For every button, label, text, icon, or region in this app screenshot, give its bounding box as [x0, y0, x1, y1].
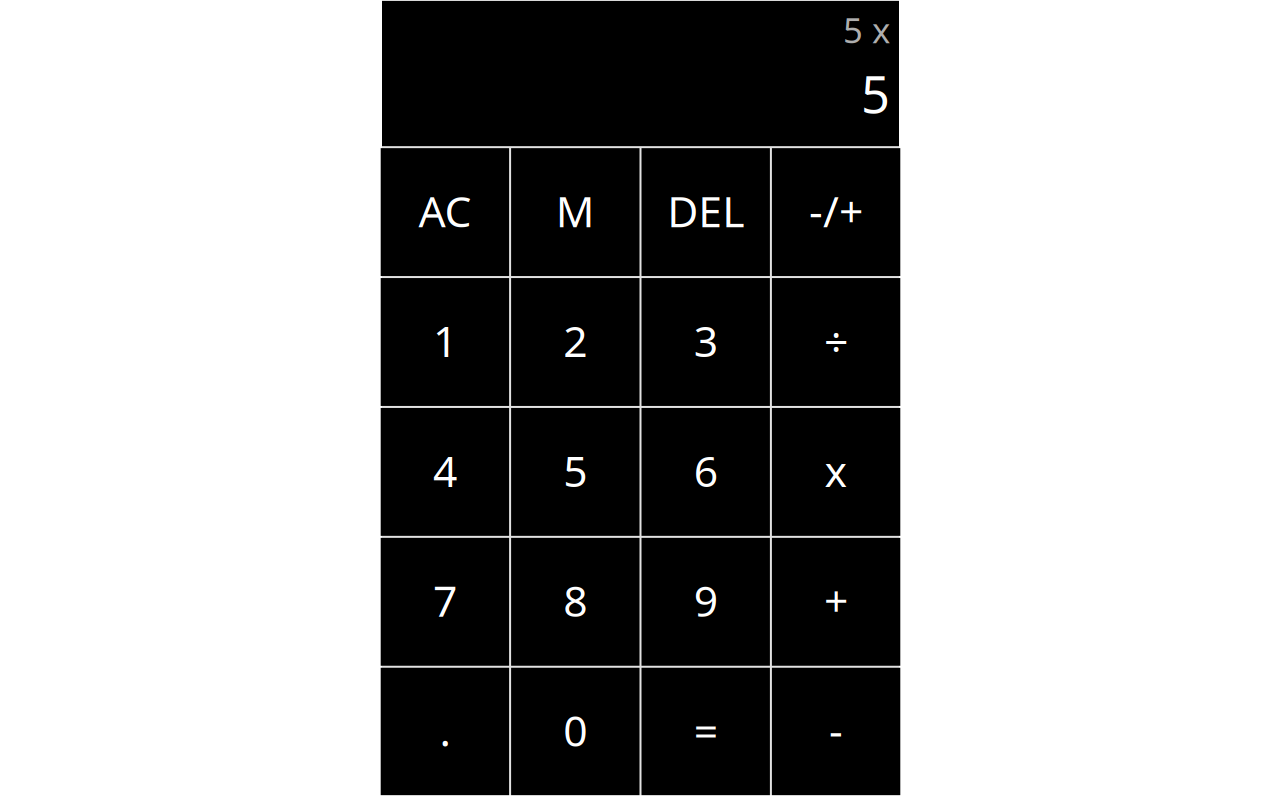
staticText: 4: [433, 442, 457, 499]
button[interactable]: 5: [511, 408, 639, 536]
staticText: DEL: [667, 182, 744, 239]
button[interactable]: Subtract: [772, 668, 900, 795]
staticText: 5: [563, 442, 587, 499]
staticText: ÷: [824, 312, 848, 369]
staticText: 8: [563, 572, 587, 629]
staticText: .: [439, 702, 450, 758]
staticText: =: [694, 702, 718, 758]
button[interactable]: 8: [511, 538, 639, 666]
button[interactable]: Delete: [641, 148, 770, 276]
staticText: 1: [433, 312, 457, 369]
staticText: 3: [694, 312, 718, 369]
button[interactable]: Decimal point: [381, 668, 509, 795]
staticText: 6: [694, 442, 718, 499]
button[interactable]: 9: [641, 538, 770, 666]
staticText: 7: [433, 572, 457, 629]
button[interactable]: All clear: [381, 148, 509, 276]
staticText: -/+: [809, 182, 863, 239]
button[interactable]: 2: [511, 278, 639, 406]
staticText: 5 x: [843, 7, 890, 53]
staticText: x: [825, 442, 848, 499]
staticText: AC: [418, 182, 471, 239]
button[interactable]: Add: [772, 538, 900, 666]
button[interactable]: 3: [641, 278, 770, 406]
staticText: 9: [694, 572, 718, 629]
button[interactable]: 7: [381, 538, 509, 666]
staticText: 5: [861, 60, 890, 127]
button[interactable]: 4: [381, 408, 509, 536]
button[interactable]: Multiply: [772, 408, 900, 536]
button[interactable]: Toggle sign: [772, 148, 900, 276]
button[interactable]: 1: [381, 278, 509, 406]
button[interactable]: Equals: [641, 668, 770, 795]
staticText: -: [829, 702, 843, 758]
button[interactable]: 0: [511, 668, 639, 795]
button[interactable]: Divide: [772, 278, 900, 406]
staticText: 2: [563, 312, 587, 369]
button[interactable]: 6: [641, 408, 770, 536]
staticText: M: [556, 182, 595, 239]
staticText: +: [824, 572, 848, 629]
staticText: 0: [563, 702, 587, 758]
button[interactable]: Memory: [511, 148, 639, 276]
